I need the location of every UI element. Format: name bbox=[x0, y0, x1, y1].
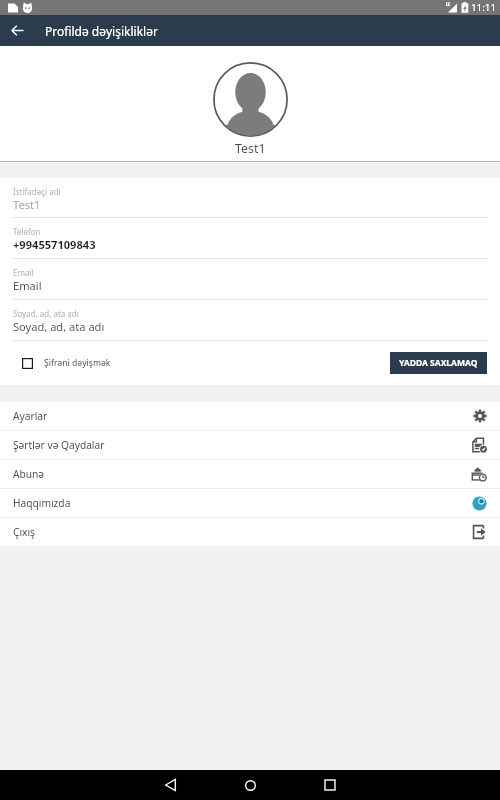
button[interactable]: System back bbox=[155, 770, 185, 800]
staticText: Şifrəni dəyişmək bbox=[44, 357, 111, 369]
staticText: Ayarlar bbox=[13, 409, 48, 423]
button[interactable]: YADDA SAXLAMAQ bbox=[390, 352, 487, 374]
button[interactable]: Recents bbox=[315, 770, 345, 800]
button[interactable]: Home bbox=[235, 770, 265, 800]
button[interactable]: Şifrəni dəyişmək bbox=[22, 357, 111, 369]
staticText: YADDA SAXLAMAQ bbox=[399, 357, 478, 369]
staticText: Test1 bbox=[13, 197, 41, 212]
button[interactable]: Haqqımızda bbox=[0, 489, 500, 517]
staticText: Test1 bbox=[235, 140, 266, 157]
button[interactable]: Back bbox=[5, 18, 30, 43]
button[interactable]: Şərtlər və Qaydalar bbox=[0, 431, 500, 459]
staticText: Haqqımızda bbox=[13, 496, 71, 510]
staticText: İstifadəçi adı bbox=[13, 186, 61, 197]
staticText: Şərtlər və Qaydalar bbox=[13, 438, 105, 452]
staticText: Abunə bbox=[13, 467, 45, 481]
staticText: Soyad, ad, ata adı bbox=[13, 319, 105, 334]
staticText: 11:11 bbox=[471, 1, 497, 14]
staticText: Çıxış bbox=[13, 525, 35, 539]
staticText: Email bbox=[13, 278, 42, 293]
staticText: Telefon bbox=[13, 226, 41, 237]
staticText: Soyad, ad, ata adı bbox=[13, 308, 79, 319]
button[interactable]: Change profile photo bbox=[213, 62, 288, 137]
staticText: Email bbox=[13, 267, 34, 278]
button[interactable]: Ayarlar bbox=[0, 402, 500, 430]
button[interactable]: Çıxış bbox=[0, 518, 500, 546]
button[interactable]: Abunə bbox=[0, 460, 500, 488]
staticText: +994557109843 bbox=[13, 237, 96, 252]
staticText: Profildə dəyişikliklər bbox=[45, 23, 158, 39]
